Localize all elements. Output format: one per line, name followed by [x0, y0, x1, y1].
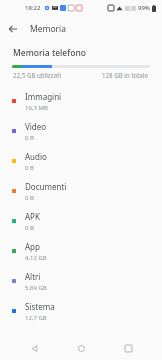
staticText: 4,12 GB: [25, 254, 47, 262]
button[interactable]: APK: [0, 206, 162, 236]
staticText: 0 B: [25, 134, 34, 142]
button[interactable]: Recent apps: [115, 336, 141, 360]
staticText: Immagini: [25, 91, 62, 102]
button[interactable]: Altri: [0, 266, 162, 296]
staticText: 5,69 GB: [25, 284, 47, 292]
staticText: 0 B: [25, 194, 34, 202]
staticText: 0 B: [25, 164, 34, 172]
button[interactable]: Immagini: [0, 86, 162, 116]
staticText: 16,3 MB: [25, 104, 48, 112]
staticText: Memoria: [30, 23, 67, 35]
staticText: Sistema: [25, 301, 55, 312]
button[interactable]: Documenti: [0, 176, 162, 206]
staticText: 12,7 GB: [25, 314, 47, 322]
button[interactable]: Video: [0, 116, 162, 146]
button[interactable]: Home: [68, 336, 94, 360]
staticText: Altri: [25, 271, 41, 282]
staticText: 99%: [138, 4, 150, 12]
staticText: Audio: [25, 151, 47, 162]
staticText: 18:22: [25, 4, 41, 12]
staticText: APK: [25, 211, 40, 222]
staticText: Memoria telefono: [13, 47, 86, 59]
staticText: 128 GB in totale: [102, 71, 149, 79]
button[interactable]: Sistema: [0, 296, 162, 326]
button[interactable]: Back: [21, 336, 47, 360]
button[interactable]: Back: [0, 16, 26, 42]
button[interactable]: App: [0, 236, 162, 266]
staticText: 22,5 GB utilizzati: [13, 71, 61, 79]
staticText: Documenti: [25, 181, 67, 192]
button[interactable]: Audio: [0, 146, 162, 176]
staticText: App: [25, 241, 40, 252]
staticText: Video: [25, 121, 47, 132]
staticText: 0 B: [25, 224, 34, 232]
